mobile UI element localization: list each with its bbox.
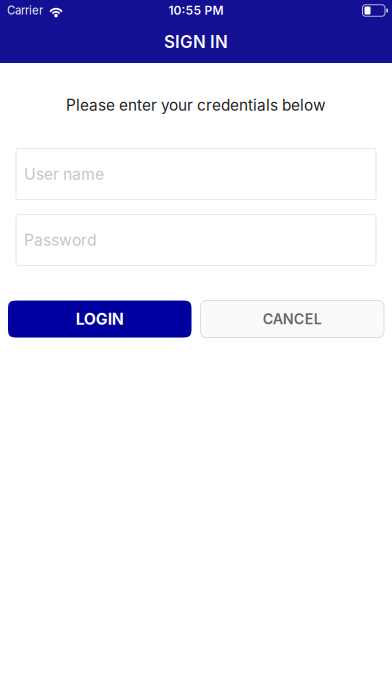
button[interactable]: CANCEL bbox=[200, 301, 384, 338]
staticText: CANCEL bbox=[263, 310, 322, 328]
staticText: Carrier bbox=[7, 4, 43, 17]
staticText: SIGN IN bbox=[164, 32, 228, 52]
staticText: User name bbox=[24, 164, 104, 183]
staticText: LOGIN bbox=[76, 309, 124, 328]
staticText: Please enter your credentials below bbox=[66, 96, 326, 115]
button[interactable]: Password bbox=[16, 215, 376, 266]
staticText: Password bbox=[24, 230, 97, 249]
staticText: 10:55 PM bbox=[168, 3, 223, 18]
button[interactable]: LOGIN bbox=[8, 301, 191, 338]
button[interactable]: User name bbox=[16, 149, 376, 200]
